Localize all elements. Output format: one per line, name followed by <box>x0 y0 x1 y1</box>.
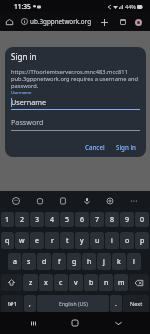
button[interactable]: x <box>39 274 53 291</box>
staticText: Password <box>11 117 44 127</box>
button[interactable]: t <box>60 232 74 249</box>
staticText: v <box>74 278 78 288</box>
button[interactable]: w <box>15 232 29 249</box>
staticText: 0 <box>140 215 145 225</box>
staticText: r <box>51 236 54 246</box>
button[interactable]: j <box>97 253 111 270</box>
button[interactable]: Keyboard tool 2 <box>56 194 70 208</box>
button[interactable]: New tab <box>98 16 110 28</box>
button[interactable]: English (US) <box>37 295 109 312</box>
button[interactable]: i <box>105 232 119 249</box>
staticText: ub.3gppnetwork.org <box>30 17 92 26</box>
button[interactable]: n <box>99 274 113 291</box>
button[interactable]: 5 <box>60 212 74 227</box>
staticText: 9 <box>125 215 130 225</box>
button[interactable]: !#1 <box>1 295 23 312</box>
staticText: j <box>103 257 105 267</box>
button[interactable]: Next <box>123 295 149 312</box>
staticText: i <box>111 236 113 246</box>
staticText: b <box>89 278 94 288</box>
button[interactable]: 7 <box>90 212 104 227</box>
button[interactable]: 4 <box>45 212 59 227</box>
button[interactable]: q <box>1 232 14 249</box>
staticText: m <box>118 278 125 288</box>
staticText: 1 <box>5 215 10 225</box>
staticText: 5 <box>65 215 70 225</box>
button[interactable]: m <box>114 274 128 291</box>
button[interactable]: 0 <box>135 212 149 227</box>
staticText: !#1 <box>8 300 17 308</box>
staticText: g <box>72 257 77 267</box>
staticText: 11:35 <box>14 2 31 11</box>
staticText: https://Tfoorlemtserver.ros.mnc483.mcc81… <box>11 68 139 90</box>
button[interactable]: ub.3gppnetwork.org <box>21 17 101 26</box>
staticText: Username <box>11 97 46 107</box>
button[interactable]: . <box>110 295 122 312</box>
button[interactable]: d <box>37 253 51 270</box>
button[interactable]: Home <box>65 313 85 333</box>
button[interactable]: , <box>24 295 36 312</box>
button[interactable]: o <box>120 232 134 249</box>
button[interactable]: a <box>8 253 21 270</box>
staticText: z <box>29 278 33 288</box>
button[interactable]: h <box>82 253 96 270</box>
staticText: Cancel <box>85 143 105 151</box>
button[interactable]: v <box>69 274 83 291</box>
button[interactable]: 6 <box>75 212 89 227</box>
button[interactable]: Account <box>132 16 144 28</box>
button[interactable]: Hide keyboard <box>108 313 128 333</box>
staticText: , <box>29 299 31 308</box>
staticText: 7 <box>95 215 100 225</box>
staticText: k <box>117 257 121 267</box>
button[interactable]: 3 <box>30 212 44 227</box>
button[interactable]: 9 <box>120 212 134 227</box>
button[interactable]: Home <box>3 15 16 28</box>
button[interactable]: Keyboard tool 5 <box>127 194 141 208</box>
staticText: e <box>35 236 39 246</box>
button[interactable]: l <box>127 253 141 270</box>
button[interactable]: c <box>54 274 68 291</box>
button[interactable]: r <box>45 232 59 249</box>
button[interactable]: u <box>90 232 104 249</box>
button[interactable]: k <box>112 253 126 270</box>
staticText: x <box>44 278 48 288</box>
button[interactable]: Tabs <box>117 16 129 28</box>
staticText: q <box>5 236 10 246</box>
staticText: c <box>59 278 63 288</box>
button[interactable]: Keyboard tool 1 <box>33 194 47 208</box>
button[interactable]: e <box>30 232 44 249</box>
button[interactable]: Backspace <box>129 274 149 291</box>
staticText: 44% <box>125 3 136 10</box>
staticText: . <box>115 299 117 308</box>
button[interactable]: z <box>23 274 38 291</box>
staticText: h <box>87 257 92 267</box>
button[interactable]: 2 <box>15 212 29 227</box>
staticText: 6 <box>80 215 85 225</box>
staticText: t <box>66 236 69 246</box>
button[interactable]: g <box>67 253 81 270</box>
button[interactable]: 1 <box>1 212 14 227</box>
button[interactable]: s <box>22 253 36 270</box>
button[interactable]: f <box>52 253 66 270</box>
button[interactable]: Sign in <box>113 141 139 153</box>
button[interactable]: Shift <box>1 274 22 291</box>
button[interactable]: Keyboard tool 3 <box>80 194 94 208</box>
button[interactable]: Recent apps <box>23 313 43 333</box>
staticText: f <box>58 257 61 267</box>
staticText: u <box>95 236 100 246</box>
staticText: Sign in <box>116 143 136 151</box>
button[interactable]: y <box>75 232 89 249</box>
staticText: o <box>125 236 130 246</box>
staticText: 2 <box>20 215 25 225</box>
button[interactable]: p <box>135 232 149 249</box>
button[interactable]: 8 <box>105 212 119 227</box>
staticText: Sign in <box>11 51 37 62</box>
staticText: Next <box>130 300 143 308</box>
button[interactable]: Keyboard tool 0 <box>9 194 23 208</box>
button[interactable]: Cancel <box>82 141 108 153</box>
button[interactable]: b <box>84 274 98 291</box>
staticText: d <box>42 257 47 267</box>
staticText: 4 <box>50 215 55 225</box>
staticText: a <box>13 257 17 267</box>
button[interactable]: Keyboard tool 4 <box>103 194 117 208</box>
